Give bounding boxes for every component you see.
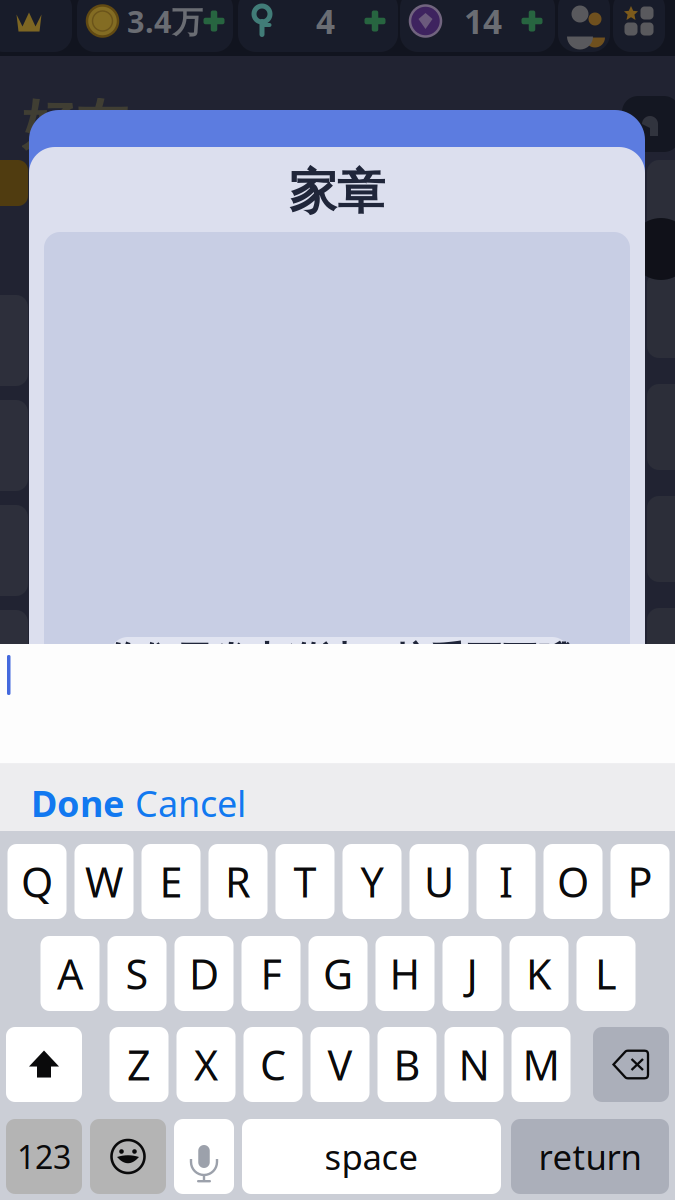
- button[interactable]: C: [243, 1027, 302, 1102]
- button[interactable]: D: [174, 936, 233, 1011]
- staticText: Q: [21, 854, 53, 909]
- staticText: H: [389, 946, 420, 1001]
- button[interactable]: V: [310, 1027, 369, 1102]
- staticText: J: [466, 946, 477, 1001]
- button[interactable]: Coins: [77, 0, 233, 52]
- staticText: 家章: [289, 162, 385, 221]
- button[interactable]: R: [208, 844, 267, 919]
- staticText: W: [85, 854, 123, 909]
- staticText: A: [57, 946, 83, 1001]
- staticText: M: [522, 1037, 559, 1092]
- staticText: space: [324, 1133, 418, 1179]
- button[interactable]: Friends: [558, 0, 610, 52]
- button[interactable]: return: [511, 1119, 669, 1194]
- staticText: S: [125, 946, 148, 1001]
- staticText: 4: [316, 0, 335, 43]
- staticText: Cancel: [135, 779, 246, 827]
- button[interactable]: X: [176, 1027, 235, 1102]
- staticText: L: [595, 946, 617, 1001]
- button[interactable]: Cancel: [129, 765, 252, 841]
- button[interactable]: 123: [6, 1119, 82, 1194]
- button[interactable]: L: [576, 936, 635, 1011]
- staticText: I: [499, 854, 513, 909]
- button[interactable]: N: [444, 1027, 503, 1102]
- button[interactable]: P: [610, 844, 669, 919]
- button[interactable]: Delete: [593, 1027, 669, 1102]
- staticText: 14: [464, 0, 502, 43]
- button[interactable]: Gems: [400, 0, 555, 52]
- staticText: U: [424, 854, 454, 909]
- button[interactable]: A: [40, 936, 99, 1011]
- staticText: G: [323, 946, 353, 1001]
- button[interactable]: K: [509, 936, 568, 1011]
- staticText: D: [189, 946, 219, 1001]
- button[interactable]: Z: [109, 1027, 168, 1102]
- staticText: 123: [17, 1135, 71, 1178]
- staticText: return: [538, 1133, 641, 1179]
- staticText: C: [260, 1037, 286, 1092]
- button[interactable]: J: [442, 936, 501, 1011]
- staticText: R: [225, 854, 251, 909]
- staticText: 3.4万: [127, 1, 203, 41]
- button[interactable]: B: [377, 1027, 436, 1102]
- button[interactable]: F: [241, 936, 300, 1011]
- staticText: K: [526, 946, 552, 1001]
- button[interactable]: M: [511, 1027, 570, 1102]
- staticText: T: [293, 854, 316, 909]
- button[interactable]: H: [375, 936, 434, 1011]
- staticText: 你们已发出邀请，接受要不哦: [106, 638, 574, 682]
- button[interactable]: space: [242, 1119, 501, 1194]
- button[interactable]: T: [275, 844, 334, 919]
- button[interactable]: O: [543, 844, 602, 919]
- button[interactable]: G: [308, 936, 367, 1011]
- button[interactable]: W: [74, 844, 133, 919]
- button[interactable]: Keys: [238, 0, 398, 52]
- staticText: V: [327, 1037, 352, 1092]
- button[interactable]: Done: [25, 765, 130, 841]
- button[interactable]: Dictation: [174, 1119, 234, 1194]
- staticText: 好友: [22, 92, 128, 157]
- button[interactable]: S: [107, 936, 166, 1011]
- button[interactable]: E: [141, 844, 200, 919]
- button[interactable]: U: [409, 844, 468, 919]
- button[interactable]: Emoji: [90, 1119, 166, 1194]
- staticText: X: [194, 1037, 218, 1092]
- button[interactable]: Shift: [6, 1027, 82, 1102]
- button[interactable]: More: [613, 0, 665, 52]
- staticText: F: [260, 946, 281, 1001]
- staticText: Y: [360, 854, 383, 909]
- staticText: Done: [31, 779, 124, 827]
- staticText: P: [627, 854, 652, 909]
- button[interactable]: Q: [7, 844, 66, 919]
- staticText: E: [159, 854, 182, 909]
- staticText: O: [557, 854, 589, 909]
- button[interactable]: I: [476, 844, 535, 919]
- staticText: B: [393, 1037, 420, 1092]
- button[interactable]: Y: [342, 844, 401, 919]
- staticText: Z: [127, 1037, 151, 1092]
- staticText: N: [458, 1037, 489, 1092]
- button[interactable]: Rank: [0, 0, 72, 52]
